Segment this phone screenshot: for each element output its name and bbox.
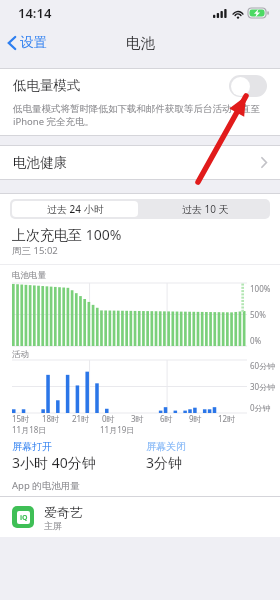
staticText: 电池电量 <box>12 270 46 281</box>
staticText: 周三 15:02 <box>12 244 58 257</box>
staticText: 0时 <box>102 413 115 424</box>
button[interactable]: 设置 <box>0 28 57 57</box>
staticText: 过去 24 小时 <box>47 202 104 216</box>
button[interactable]: 过去 24 小时 <box>12 201 138 217</box>
staticText: 50% <box>250 309 266 320</box>
button[interactable]: 低电量模式 开关 <box>229 75 267 97</box>
staticText: 11月18日 <box>12 424 47 435</box>
button[interactable]: 电池健康 <box>0 146 280 179</box>
staticText: 21时 <box>72 413 90 424</box>
staticText: 30分钟 <box>250 381 276 392</box>
staticText: 18时 <box>42 413 60 424</box>
staticText: 0% <box>250 335 262 346</box>
staticText: 低电量模式将暂时降低如下载和邮件获取等后台活动，直至 iPhone 完全充电。 <box>13 102 267 128</box>
button[interactable]: 过去 10 天 <box>140 199 270 219</box>
staticText: 0分钟 <box>250 402 271 413</box>
staticText: 主屏 <box>44 520 62 531</box>
staticText: 11月19日 <box>100 424 135 435</box>
staticText: 6时 <box>160 413 173 424</box>
staticText: 电池健康 <box>13 154 261 171</box>
button[interactable]: iQ <box>0 497 280 537</box>
staticText: iQ <box>20 513 28 523</box>
staticText: 爱奇艺 <box>44 504 83 520</box>
staticText: 3时 <box>131 413 144 424</box>
staticText: 活动 <box>12 349 29 360</box>
staticText: 过去 10 天 <box>182 202 229 216</box>
staticText: App 的电池用量 <box>12 479 80 492</box>
staticText: 3分钟 <box>146 453 183 472</box>
staticText: 60分钟 <box>250 360 276 371</box>
staticText: 3小时 40分钟 <box>12 453 96 472</box>
staticText: 设置 <box>20 34 47 51</box>
staticText: 100% <box>250 283 271 294</box>
staticText: 低电量模式 <box>13 77 229 94</box>
staticText: 上次充电至 100% <box>12 225 122 244</box>
staticText: 15时 <box>12 413 30 424</box>
staticText: 电池 <box>126 34 155 52</box>
staticText: 12时 <box>218 413 236 424</box>
staticText: 14:14 <box>18 4 52 22</box>
staticText: 9时 <box>189 413 202 424</box>
button[interactable]: 低电量模式 <box>0 69 280 102</box>
staticText: 屏幕关闭 <box>146 440 186 453</box>
staticText: 屏幕打开 <box>12 440 52 453</box>
